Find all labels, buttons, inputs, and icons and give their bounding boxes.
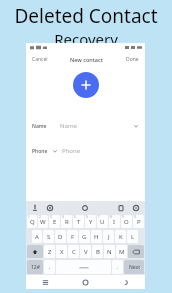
button[interactable]: . <box>112 260 123 274</box>
button[interactable]: Back <box>105 275 145 289</box>
button[interactable]: Cancel <box>31 55 49 64</box>
button[interactable]: Phone <box>32 145 139 157</box>
staticText: , <box>49 264 51 271</box>
staticText: C <box>72 248 76 256</box>
button[interactable]: Add photo <box>73 72 99 98</box>
staticText: Cancel <box>32 56 48 63</box>
staticText: X <box>60 248 64 256</box>
button[interactable]: K <box>115 230 126 243</box>
button[interactable]: S <box>43 230 54 243</box>
staticText: 3 <box>50 215 52 219</box>
button[interactable]: J <box>103 230 114 243</box>
button[interactable]: P <box>133 215 144 228</box>
button[interactable]: B <box>92 245 103 258</box>
staticText: G <box>82 233 87 241</box>
button[interactable]: Done <box>125 55 140 64</box>
button[interactable]: Clipboard <box>117 204 125 212</box>
staticText: Name <box>60 122 77 130</box>
staticText: I <box>113 218 116 226</box>
button[interactable]: Sticker <box>81 204 89 212</box>
button[interactable]: Settings <box>46 204 54 212</box>
staticText: 1 <box>28 215 30 219</box>
staticText: H <box>94 233 99 241</box>
button[interactable]: L <box>127 230 138 243</box>
button[interactable]: Next <box>124 260 144 274</box>
staticText: F <box>71 233 75 241</box>
staticText: U <box>100 218 105 226</box>
staticText: K <box>119 233 123 241</box>
staticText: Phone <box>62 147 81 155</box>
staticText: Name <box>32 123 47 130</box>
button[interactable]: H <box>91 230 102 243</box>
staticText: 5 <box>74 215 76 219</box>
staticText: A <box>35 233 39 241</box>
button[interactable]: Voice input <box>31 204 39 212</box>
staticText: R <box>65 218 69 226</box>
staticText: Q <box>30 218 35 226</box>
button[interactable]: Y <box>85 215 96 228</box>
button[interactable]: 12# <box>27 260 43 274</box>
staticText: Deleted Contact <box>14 3 158 29</box>
button[interactable]: F <box>67 230 78 243</box>
staticText: V <box>84 248 88 256</box>
staticText: T <box>77 218 81 226</box>
button[interactable]: N <box>104 245 115 258</box>
staticText: Done <box>126 56 139 63</box>
button[interactable]: D <box>55 230 66 243</box>
staticText: 2 <box>39 215 41 219</box>
staticText: W <box>40 218 46 226</box>
button[interactable]: M <box>116 245 127 258</box>
staticText: Next <box>129 264 140 271</box>
staticText: L <box>131 233 135 241</box>
staticText: E <box>53 218 57 226</box>
staticText: . <box>117 264 119 271</box>
button[interactable]: I <box>109 215 120 228</box>
button[interactable]: X <box>56 245 67 258</box>
staticText: New contact <box>70 56 103 63</box>
button[interactable]: E <box>49 215 60 228</box>
button[interactable]: V <box>80 245 91 258</box>
button[interactable]: More options <box>132 204 140 212</box>
staticText: O <box>124 218 129 226</box>
staticText: Z <box>48 248 52 256</box>
button[interactable]: Backspace <box>128 245 144 258</box>
staticText: Y <box>89 218 93 226</box>
staticText: 6 <box>86 215 88 219</box>
staticText: 4 <box>62 215 64 219</box>
staticText: 9 <box>122 215 124 219</box>
button[interactable]: C <box>68 245 79 258</box>
staticText: J <box>108 233 110 241</box>
staticText: 7 <box>98 215 100 219</box>
staticText: N <box>107 248 112 256</box>
staticText: 8 <box>110 215 112 219</box>
button[interactable]: W <box>38 215 48 228</box>
button[interactable]: R <box>61 215 72 228</box>
staticText: 12# <box>31 264 40 271</box>
button[interactable]: G <box>79 230 90 243</box>
staticText: D <box>58 233 63 241</box>
button[interactable]: Name <box>32 120 139 132</box>
button[interactable]: Z <box>44 245 55 258</box>
button[interactable]: Shift <box>27 245 43 258</box>
button[interactable]: Space <box>56 260 111 274</box>
staticText: Phone <box>32 148 48 155</box>
button[interactable]: U <box>97 215 108 228</box>
button[interactable]: O <box>121 215 132 228</box>
staticText: Recovery <box>54 29 118 49</box>
staticText: S <box>47 233 51 241</box>
button[interactable]: T <box>73 215 84 228</box>
button[interactable]: Recents <box>26 275 65 289</box>
button[interactable]: Emoji <box>44 260 55 274</box>
staticText: 0 <box>134 215 136 219</box>
button[interactable]: Q <box>27 215 37 228</box>
staticText: B <box>96 248 100 256</box>
button[interactable]: A <box>32 230 42 243</box>
staticText: P <box>137 218 141 226</box>
button[interactable]: Home <box>65 275 105 289</box>
staticText: M <box>119 248 125 256</box>
